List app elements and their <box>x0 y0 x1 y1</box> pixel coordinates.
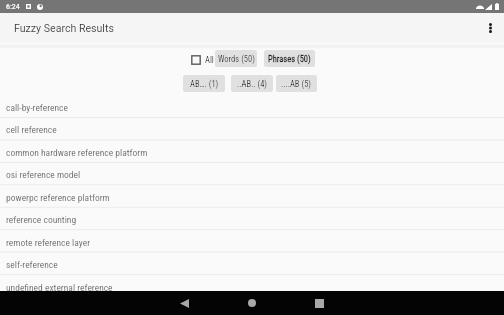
button[interactable]: call-by-reference <box>0 95 504 117</box>
staticText: Phrases (50) <box>268 54 311 64</box>
staticText: Words (50) <box>218 54 255 64</box>
button[interactable]: undefined external reference <box>0 275 504 297</box>
button[interactable]: cell reference <box>0 117 504 139</box>
staticText: self-reference <box>6 259 58 270</box>
button[interactable]: Recents <box>307 291 331 315</box>
button[interactable]: remote reference layer <box>0 230 504 252</box>
button[interactable]: ....AB (5) <box>276 75 317 92</box>
button[interactable]: More options <box>476 14 504 42</box>
staticText: Fuzzy Search Results <box>14 22 114 34</box>
staticText: reference counting <box>6 214 77 225</box>
button[interactable]: reference counting <box>0 207 504 229</box>
button[interactable]: AB…. (1) <box>183 75 225 92</box>
button[interactable]: Back <box>172 291 196 315</box>
staticText: powerpc reference platform <box>6 192 110 203</box>
button[interactable]: Words (50) <box>215 50 257 67</box>
staticText: ..AB.. (4) <box>237 79 268 89</box>
button[interactable]: Home <box>240 291 264 315</box>
button[interactable]: powerpc reference platform <box>0 185 504 207</box>
staticText: osi reference model <box>6 169 81 180</box>
button[interactable]: osi reference model <box>0 162 504 184</box>
button[interactable]: All <box>191 53 214 67</box>
button[interactable]: Phrases (50) <box>264 50 315 67</box>
button[interactable]: common hardware reference platform <box>0 140 504 162</box>
staticText: common hardware reference platform <box>6 147 148 158</box>
staticText: undefined external reference <box>6 282 113 293</box>
staticText: remote reference layer <box>6 237 91 248</box>
staticText: call-by-reference <box>6 102 68 113</box>
staticText: cell reference <box>6 124 57 135</box>
staticText: AB…. (1) <box>190 79 219 89</box>
button[interactable]: ..AB.. (4) <box>231 75 273 92</box>
button[interactable]: self-reference <box>0 252 504 274</box>
staticText: All <box>205 55 214 65</box>
staticText: ....AB (5) <box>281 79 312 89</box>
staticText: 6:24 <box>6 2 20 11</box>
